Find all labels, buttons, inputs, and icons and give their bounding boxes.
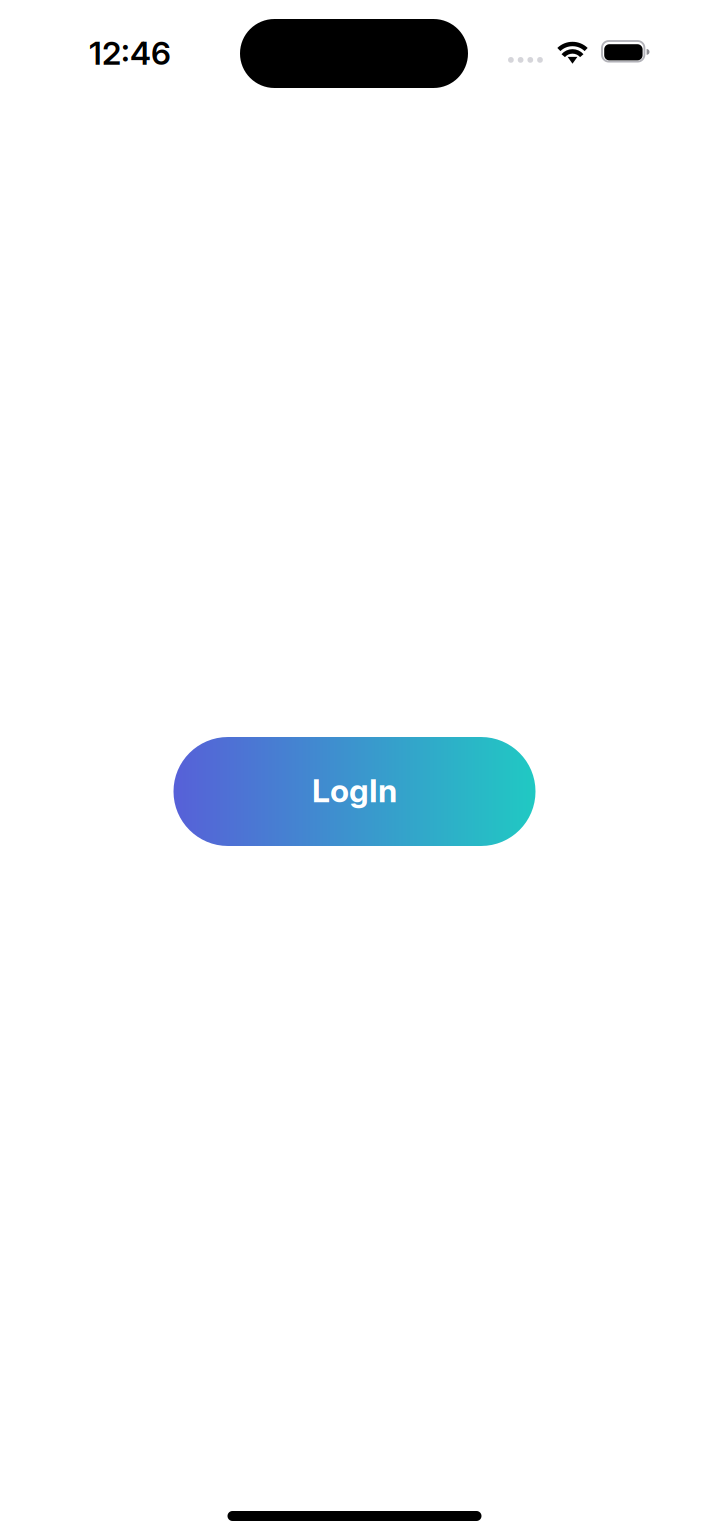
staticText: 12:46 [89, 34, 171, 72]
staticText: LogIn [312, 771, 397, 810]
button[interactable]: LogIn [173, 737, 535, 846]
